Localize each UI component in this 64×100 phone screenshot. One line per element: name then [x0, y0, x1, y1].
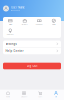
staticText: Category — [20, 96, 27, 98]
button[interactable]: Home — [0, 91, 16, 98]
staticText: Me — [55, 96, 57, 98]
staticText: Address — [7, 33, 14, 35]
button[interactable]: Settings — [3, 40, 61, 47]
button[interactable]: Log Out — [3, 63, 61, 69]
staticText: Log Out — [26, 64, 37, 68]
button[interactable]: Category — [16, 91, 32, 98]
staticText: Wallet — [9, 23, 12, 25]
staticText: Help Center — [6, 49, 24, 53]
button[interactable]: Help Center — [3, 47, 61, 54]
staticText: Home — [6, 96, 10, 98]
button[interactable]: Points — [46, 18, 61, 26]
staticText: User Name — [11, 6, 25, 9]
staticText: Settings — [6, 42, 17, 46]
button[interactable]: Coupons — [32, 18, 46, 26]
staticText: Orders — [22, 23, 28, 25]
staticText: Points — [52, 23, 56, 25]
staticText: Coupons — [36, 23, 43, 25]
staticText: Cart — [38, 96, 41, 98]
button[interactable]: Wallet — [3, 18, 17, 26]
staticText: ID: 12345678 — [11, 10, 20, 11]
button[interactable]: Address — [3, 28, 17, 36]
button[interactable]: Orders — [17, 18, 32, 26]
button[interactable]: Cart — [32, 91, 48, 98]
button[interactable]: Me — [48, 91, 64, 98]
